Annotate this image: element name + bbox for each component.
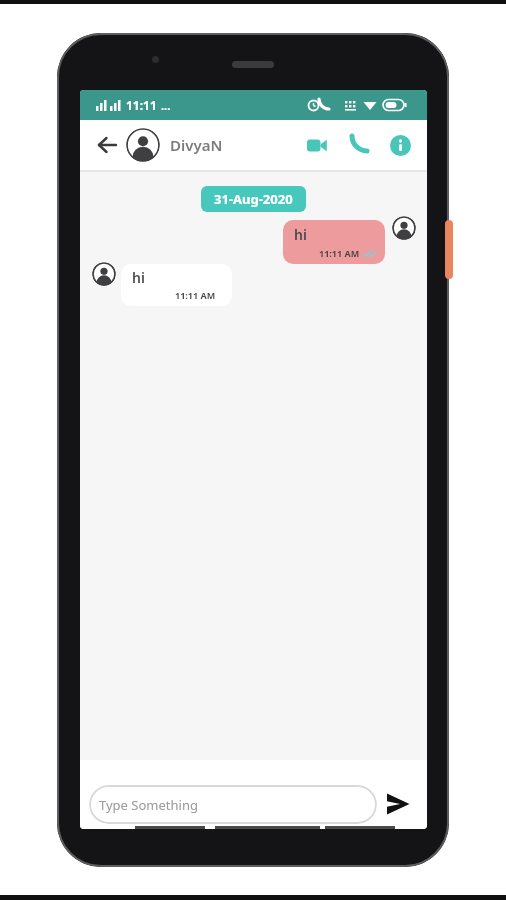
staticText: hi <box>294 225 307 244</box>
button[interactable]: Type Something <box>89 785 377 824</box>
button[interactable] <box>382 788 414 820</box>
staticText: ... <box>161 98 171 113</box>
staticText: 11:11 AM <box>319 247 360 259</box>
staticText: Type Something <box>99 796 198 814</box>
staticText: DivyaN <box>170 135 223 155</box>
button[interactable]: hi <box>121 264 232 306</box>
staticText: 31-Aug-2020 <box>214 190 293 208</box>
button[interactable]: hi <box>283 220 385 264</box>
button[interactable]: 31-Aug-2020 <box>201 186 306 212</box>
staticText: 11:11 <box>126 97 157 113</box>
button[interactable] <box>344 130 370 160</box>
staticText: 11:11 AM <box>175 289 216 301</box>
staticText: hi <box>132 268 145 287</box>
button[interactable] <box>304 130 330 160</box>
button[interactable] <box>388 130 412 160</box>
button[interactable] <box>95 130 119 160</box>
